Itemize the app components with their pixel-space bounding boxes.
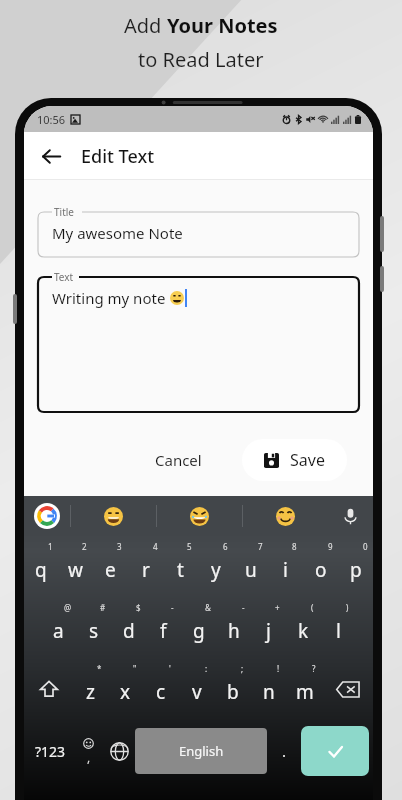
button[interactable]: t [163, 536, 198, 597]
button[interactable]: Emoji and comma [73, 720, 104, 782]
staticText: a [53, 618, 64, 644]
staticText: - [242, 602, 245, 613]
staticText: d [123, 618, 135, 644]
button[interactable]: Emoji suggestion [157, 496, 242, 536]
staticText: ; [241, 663, 244, 674]
staticText: v [192, 679, 202, 705]
button[interactable]: a [41, 597, 76, 658]
button[interactable]: Voice input [328, 496, 373, 536]
staticText: z [86, 679, 95, 705]
staticText: j [266, 618, 271, 644]
staticText: Writing my note [52, 288, 166, 308]
staticText: b [227, 679, 239, 705]
staticText: @ [64, 602, 72, 613]
staticText: Cancel [155, 450, 202, 470]
staticText: - [171, 602, 174, 613]
staticText: e [105, 557, 116, 583]
staticText: 2 [82, 541, 87, 552]
staticText: Save [290, 449, 325, 471]
staticText: ( [311, 602, 314, 613]
staticText: i [283, 557, 288, 583]
staticText: q [35, 557, 47, 583]
staticText: : [205, 663, 208, 674]
button[interactable]: Save [242, 439, 347, 481]
staticText: Title [54, 205, 74, 219]
button[interactable]: ?123 [28, 720, 73, 782]
button[interactable]: f [146, 597, 181, 658]
button[interactable]: n [251, 658, 287, 720]
staticText: $ [136, 602, 141, 613]
staticText: & [205, 602, 211, 613]
staticText: w [68, 557, 83, 583]
staticText: y [211, 557, 221, 583]
staticText: 7 [258, 541, 263, 552]
staticText: h [228, 618, 240, 644]
button[interactable]: o [303, 536, 338, 597]
button[interactable]: Emoji suggestion [71, 496, 156, 536]
button[interactable]: y [198, 536, 233, 597]
button[interactable]: i [268, 536, 303, 597]
staticText: 9 [328, 541, 333, 552]
button[interactable]: c [143, 658, 179, 720]
staticText: l [336, 618, 341, 644]
button[interactable]: Back [31, 136, 71, 176]
button[interactable]: g [181, 597, 216, 658]
button[interactable]: Cancel [139, 442, 218, 478]
staticText: o [315, 557, 327, 583]
button[interactable]: s [76, 597, 111, 658]
button[interactable]: x [108, 658, 143, 720]
staticText: k [298, 618, 309, 644]
button[interactable]: d [111, 597, 146, 658]
button[interactable]: Backspace [323, 658, 373, 720]
button[interactable]: Enter [301, 726, 369, 776]
staticText: , [87, 749, 91, 765]
button[interactable]: l [321, 597, 356, 658]
staticText: u [245, 557, 257, 583]
staticText: ?123 [35, 742, 66, 761]
staticText: 10:56 [37, 112, 66, 127]
button[interactable]: k [286, 597, 321, 658]
staticText: Add [124, 12, 167, 39]
staticText: English [179, 742, 224, 760]
button[interactable]: q [24, 536, 58, 597]
staticText: * [97, 663, 102, 674]
staticText: 6 [223, 541, 228, 552]
staticText: ! [277, 663, 280, 674]
button[interactable]: Google search [34, 503, 60, 529]
button[interactable]: h [216, 597, 251, 658]
staticText: ? [312, 663, 316, 674]
staticText: ' [169, 663, 171, 674]
button[interactable]: j [251, 597, 286, 658]
staticText: 8 [292, 541, 297, 552]
button[interactable]: Change language [104, 720, 135, 782]
button[interactable]: Emoji suggestion [243, 496, 328, 536]
button[interactable]: w [58, 536, 93, 597]
staticText: 4 [153, 541, 158, 552]
button[interactable]: r [128, 536, 163, 597]
button[interactable]: p [338, 536, 373, 597]
button[interactable]: English [135, 728, 267, 774]
staticText: ) [346, 602, 349, 613]
staticText: to Read Later [138, 46, 264, 73]
button[interactable]: e [93, 536, 128, 597]
staticText: Your Notes [167, 12, 278, 39]
button[interactable]: . [267, 720, 301, 782]
staticText: n [263, 679, 275, 705]
staticText: . [282, 741, 287, 761]
staticText: s [89, 618, 99, 644]
staticText: m [296, 679, 314, 705]
button[interactable]: v [179, 658, 215, 720]
staticText: " [133, 663, 137, 674]
button[interactable]: b [215, 658, 251, 720]
staticText: 0 [363, 541, 368, 552]
staticText: c [156, 679, 166, 705]
staticText: 1 [48, 541, 53, 552]
staticText: x [120, 679, 131, 705]
button[interactable]: m [287, 658, 323, 720]
button[interactable]: u [233, 536, 268, 597]
button[interactable]: Shift [24, 658, 73, 720]
button[interactable]: z [73, 658, 108, 720]
staticText: r [142, 557, 150, 583]
staticText: Text [54, 270, 74, 284]
staticText: Edit Text [81, 144, 155, 169]
